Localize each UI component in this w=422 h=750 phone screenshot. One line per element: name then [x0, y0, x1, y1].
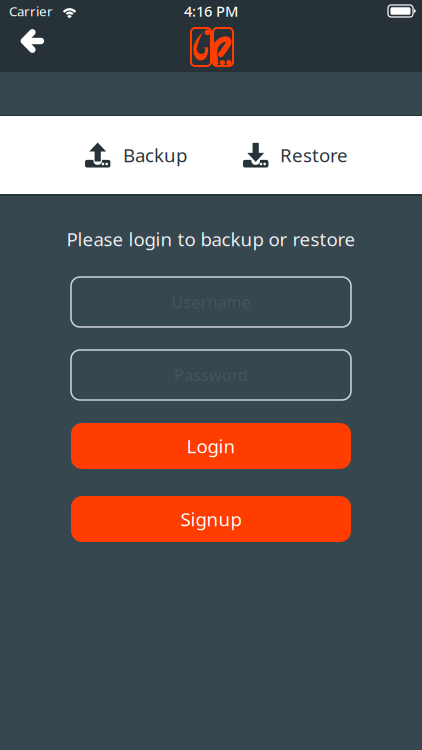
button[interactable]: Backup [85, 128, 187, 181]
staticText: 4:16 PM [184, 1, 238, 21]
staticText: Password [174, 364, 248, 386]
button[interactable]: Login [71, 423, 351, 469]
staticText: Signup [180, 507, 241, 531]
staticText: Please login to backup or restore [66, 227, 355, 251]
button[interactable]: Signup [71, 496, 351, 542]
staticText: Username [171, 291, 250, 313]
staticText: Backup [123, 143, 187, 167]
staticText: Login [186, 434, 235, 458]
staticText: Carrier [9, 2, 53, 20]
staticText: Restore [280, 143, 348, 167]
button[interactable]: Restore [243, 128, 348, 181]
button[interactable]: Back [0, 22, 58, 72]
